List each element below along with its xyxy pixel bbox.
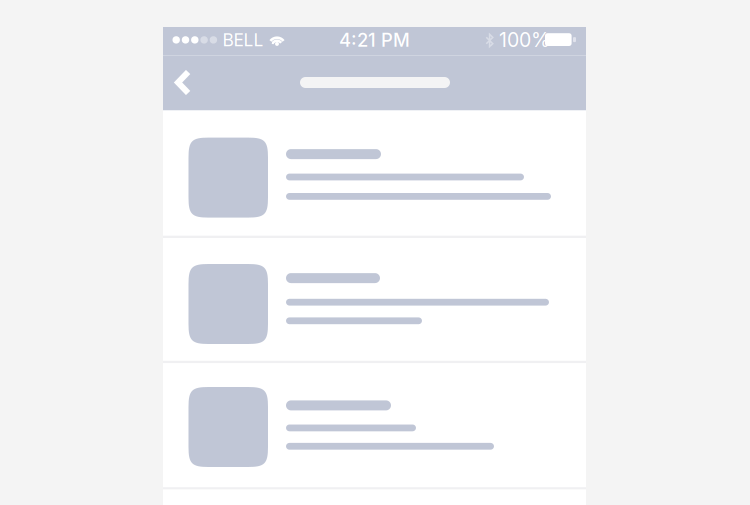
button[interactable]: Loading item — [163, 363, 586, 487]
button[interactable]: Back — [163, 56, 207, 109]
staticText: 100% — [499, 28, 550, 52]
button[interactable]: Loading item — [163, 110, 586, 236]
staticText: BELL — [222, 29, 263, 50]
staticText: 4:21 PM — [339, 29, 410, 51]
button[interactable]: Loading item — [163, 238, 586, 361]
